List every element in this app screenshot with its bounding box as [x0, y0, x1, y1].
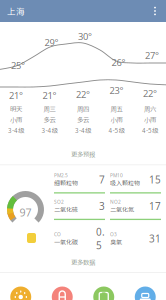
staticText: 更多预报 [71, 149, 95, 159]
button[interactable]: Car wash index [124, 283, 166, 300]
staticText: 17 [149, 199, 161, 213]
staticText: 多云 [43, 115, 55, 124]
button[interactable]: UV index [0, 283, 41, 300]
button[interactable]: Cold index [41, 283, 83, 300]
staticText: 15 [149, 173, 161, 186]
staticText: 上海 [7, 5, 25, 17]
staticText: 23° [109, 84, 123, 97]
staticText: 小雨 [10, 115, 22, 124]
staticText: 21° [9, 89, 23, 102]
staticText: PM10 [110, 172, 123, 178]
staticText: 7 [99, 173, 105, 186]
staticText: 明天 [10, 104, 22, 113]
staticText: 小雨 [144, 115, 156, 124]
staticText: 3-4级 [41, 125, 57, 135]
staticText: 3 [99, 199, 105, 213]
staticText: 27° [145, 49, 159, 62]
button[interactable]: More options [147, 0, 163, 22]
button[interactable]: 更多预报 [0, 146, 166, 162]
staticText: 周四 [77, 104, 89, 113]
button[interactable]: 上海 [0, 0, 166, 22]
staticText: 周六 [144, 104, 156, 113]
staticText: 细颗粒物 [54, 178, 78, 187]
staticText: 3-4级 [75, 125, 91, 135]
staticText: CO [54, 231, 61, 238]
staticText: 22° [143, 87, 157, 100]
button[interactable]: 更多数据 [0, 254, 166, 270]
staticText: 一氧化碳 [54, 238, 78, 246]
staticText: 周三 [43, 104, 55, 113]
staticText: 26° [111, 56, 125, 69]
staticText: 臭氧 [110, 238, 122, 246]
staticText: 小雨 [110, 115, 122, 124]
staticText: 二氧化硫 [54, 205, 78, 214]
staticText: 更多数据 [71, 257, 95, 267]
staticText: NO2 [110, 198, 121, 205]
staticText: 30° [78, 30, 92, 43]
staticText: 0.5 [96, 225, 105, 252]
staticText: 二氧化氮 [110, 205, 134, 214]
staticText: 周五 [110, 104, 122, 113]
staticText: 25° [11, 59, 25, 72]
staticText: 31 [149, 232, 161, 245]
staticText: 多云 [77, 115, 89, 124]
staticText: 4-5级 [142, 125, 158, 135]
staticText: 吸入颗粒物 [110, 178, 140, 187]
staticText: 97 [19, 205, 31, 219]
staticText: 21° [42, 89, 56, 102]
staticText: 22° [76, 88, 90, 101]
staticText: 4-5级 [108, 125, 124, 135]
staticText: O3 [110, 231, 117, 238]
staticText: 29° [44, 36, 58, 49]
staticText: PM2.5 [54, 172, 68, 178]
staticText: 3-4级 [8, 125, 24, 135]
staticText: SO2 [54, 198, 64, 205]
button[interactable]: Dressing index [83, 283, 124, 300]
